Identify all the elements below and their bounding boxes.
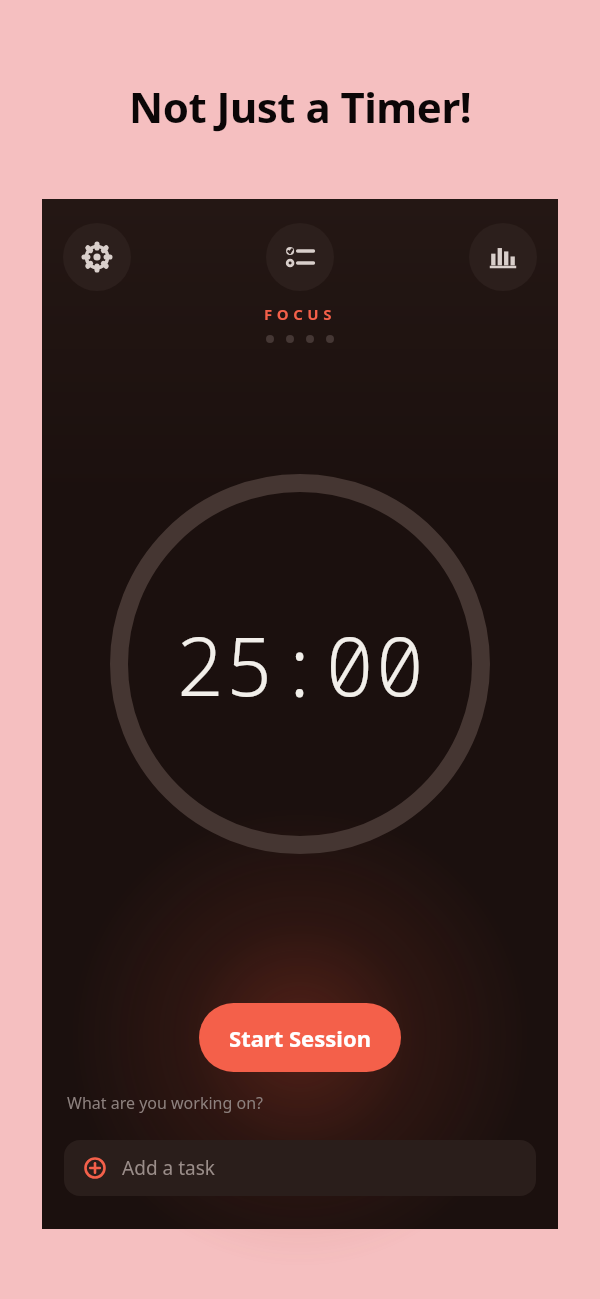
staticText: FOCUS (264, 304, 336, 324)
staticText: What are you working on? (67, 1092, 263, 1114)
button[interactable]: Add a task (64, 1140, 536, 1196)
button[interactable]: Settings (63, 223, 131, 291)
staticText: Not Just a Timer! (129, 78, 471, 135)
staticText: Start Session (229, 1023, 371, 1053)
button[interactable]: Statistics (469, 223, 537, 291)
button[interactable]: Tasks (266, 223, 334, 291)
staticText: Add a task (122, 1155, 215, 1181)
button[interactable]: Start Session (199, 1003, 401, 1072)
staticText: 25:00 (174, 608, 426, 720)
